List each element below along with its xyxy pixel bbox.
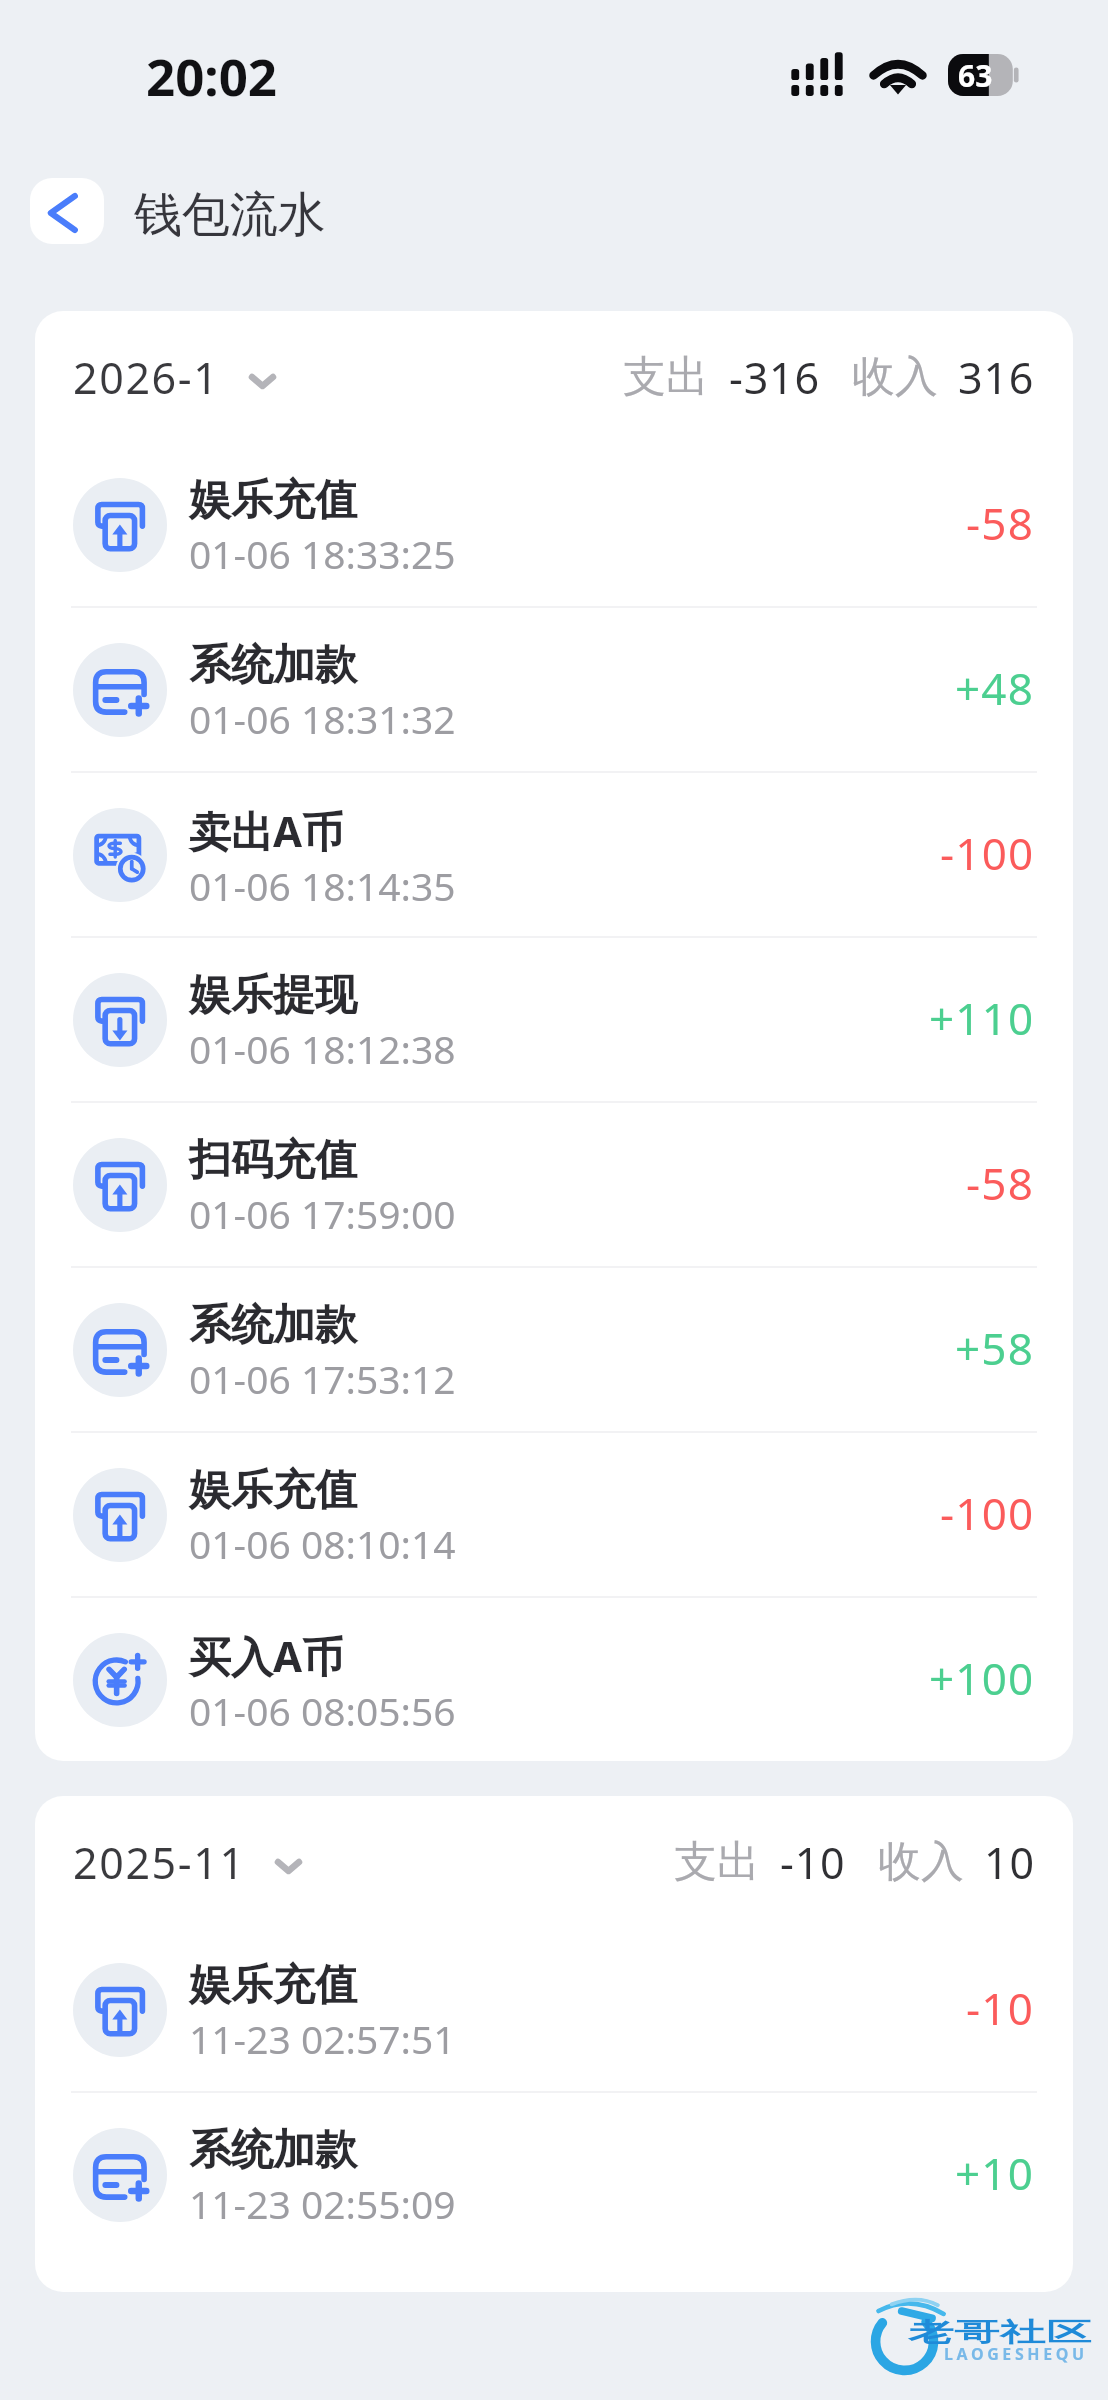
button[interactable]: 2025-11 — [73, 1833, 299, 1892]
staticText: LAOGESHEQU — [944, 2343, 1088, 2365]
staticText: 系统加款 — [189, 1299, 357, 1352]
button[interactable]: 买入A币 — [35, 1598, 1073, 1761]
button[interactable]: 卖出A币 — [35, 773, 1073, 936]
staticText: 01-06 18:33:25 — [189, 527, 456, 580]
staticText: 老哥社区 — [908, 2317, 1092, 2349]
staticText: 收入 — [878, 1835, 964, 1889]
staticText: +58 — [955, 1318, 1035, 1378]
staticText: 娱乐充值 — [189, 1959, 357, 2012]
staticText: 01-06 18:14:35 — [189, 859, 456, 912]
staticText: 支出 — [674, 1835, 760, 1889]
button[interactable]: 娱乐充值 — [35, 1433, 1073, 1596]
staticText: 01-06 08:10:14 — [189, 1517, 456, 1570]
staticText: 63 — [958, 55, 993, 96]
staticText: 娱乐提现 — [189, 969, 357, 1022]
staticText: 娱乐充值 — [189, 474, 357, 527]
staticText: 娱乐充值 — [189, 1464, 357, 1517]
button[interactable]: 系统加款 — [35, 1268, 1073, 1431]
staticText: 收入 — [852, 350, 938, 404]
staticText: -10 — [780, 1833, 846, 1892]
staticText: +100 — [929, 1648, 1035, 1708]
staticText: 钱包流水 — [134, 185, 326, 245]
staticText: 01-06 08:05:56 — [189, 1684, 456, 1737]
staticText: 扫码充值 — [189, 1134, 357, 1187]
staticText: 10 — [984, 1833, 1035, 1892]
staticText: -100 — [940, 823, 1035, 883]
button[interactable]: 2026-1 — [73, 348, 273, 407]
staticText: +10 — [955, 2143, 1035, 2203]
staticText: 01-06 17:59:00 — [189, 1187, 456, 1240]
button[interactable]: 娱乐充值 — [35, 443, 1073, 606]
staticText: 2026-1 — [73, 348, 220, 407]
staticText: -10 — [966, 1978, 1035, 2038]
staticText: 01-06 17:53:12 — [189, 1352, 456, 1405]
staticText: -316 — [729, 348, 820, 407]
staticText: 316 — [958, 348, 1035, 407]
button[interactable]: 娱乐充值 — [35, 1928, 1073, 2091]
button[interactable]: 系统加款 — [35, 608, 1073, 771]
button[interactable]: 娱乐提现 — [35, 938, 1073, 1101]
button[interactable]: 系统加款 — [35, 2093, 1073, 2256]
staticText: +48 — [955, 658, 1035, 718]
button[interactable]: 扫码充值 — [35, 1103, 1073, 1266]
staticText: 11-23 02:57:51 — [189, 2012, 456, 2065]
staticText: 11-23 02:55:09 — [189, 2177, 456, 2230]
staticText: 卖出A币 — [189, 802, 345, 859]
staticText: -58 — [966, 1153, 1035, 1213]
staticText: 支出 — [623, 350, 709, 404]
staticText: 01-06 18:31:32 — [189, 692, 456, 745]
staticText: 系统加款 — [189, 639, 357, 692]
staticText: +110 — [929, 988, 1035, 1048]
staticText: 系统加款 — [189, 2124, 357, 2177]
staticText: 买入A币 — [189, 1627, 345, 1684]
staticText: 20:02 — [146, 41, 278, 110]
staticText: 01-06 18:12:38 — [189, 1022, 456, 1075]
button[interactable]: Back — [30, 178, 104, 244]
staticText: -100 — [940, 1483, 1035, 1543]
staticText: 2025-11 — [73, 1833, 246, 1892]
staticText: -58 — [966, 493, 1035, 553]
